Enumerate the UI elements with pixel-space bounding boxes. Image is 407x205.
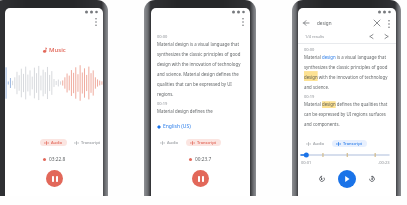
staticText: Material design is a visual language tha… [304,54,390,90]
button[interactable]: Pause [46,170,63,187]
button[interactable]: Replay 10 seconds [315,172,329,186]
staticText: 03:22.8 [49,156,66,163]
staticText: 00:23.7 [195,156,212,163]
staticText: 00:00 [304,47,315,52]
button[interactable]: More options [237,16,248,27]
button[interactable]: Transcript [332,140,367,147]
staticText: design [317,20,332,26]
button[interactable]: English (US) [157,123,191,130]
staticText: Audio [51,140,63,145]
button[interactable]: Next result [381,31,392,42]
staticText: Transcript [81,140,101,145]
button[interactable]: Audio [306,140,325,147]
staticText: Material design defines the [157,108,213,114]
button[interactable]: Audio [40,139,67,146]
button[interactable]: More options [383,18,394,29]
staticText: Audio [313,141,325,146]
staticText: Music [49,46,66,54]
button[interactable]: Audio [160,139,179,146]
staticText: English (US) [163,123,191,130]
staticText: Material design is a visual language tha… [157,41,243,97]
staticText: 00:01 [301,160,312,165]
button[interactable]: Forward 10 seconds [365,172,379,186]
staticText: 00:19 [304,94,315,99]
button[interactable]: Transcript [186,139,221,146]
staticText: Audio [167,140,179,145]
button[interactable]: Transcript [74,139,101,146]
button[interactable]: Clear search [371,17,383,29]
staticText: 00:19 [157,101,168,106]
staticText: Transcript [343,141,363,146]
button[interactable]: More options [90,16,101,27]
button[interactable]: Play [338,170,356,188]
button[interactable]: Back [300,17,312,29]
button[interactable]: Pause [192,170,209,187]
staticText: 00:00 [157,34,168,39]
staticText: Transcript [197,140,217,145]
staticText: 1/4 results [305,34,325,39]
staticText: -00:23 [378,160,390,165]
staticText: Material design defines the qualities th… [304,101,390,127]
button[interactable]: Previous result [366,31,377,42]
